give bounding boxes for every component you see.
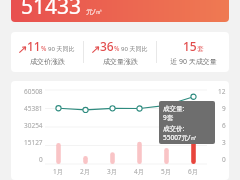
button[interactable]: 60508 xyxy=(11,81,229,180)
staticText: 成交价涨跌 xyxy=(30,57,65,66)
button[interactable]: 上涨 xyxy=(11,32,83,72)
other: 上涨 xyxy=(19,46,26,53)
staticText: 4月 xyxy=(134,167,145,176)
staticText: 5月 xyxy=(161,167,172,176)
staticText: 60508 xyxy=(24,87,43,96)
button[interactable]: 51433 xyxy=(11,0,229,22)
staticText: % xyxy=(114,44,120,53)
staticText: 6 xyxy=(222,121,226,130)
staticText: 9 xyxy=(222,104,226,113)
staticText: 90 天同比 xyxy=(121,45,148,53)
staticText: 成交价: xyxy=(163,124,185,133)
staticText: 0 xyxy=(222,155,226,164)
staticText: 15 xyxy=(183,38,197,54)
staticText: 55007元/㎡ xyxy=(163,133,198,141)
staticText: 12 xyxy=(218,87,226,96)
staticText: 90 天同比 xyxy=(48,45,75,53)
staticText: 3月 xyxy=(107,167,118,176)
staticText: 30254 xyxy=(24,121,43,130)
staticText: 11 xyxy=(27,38,41,54)
staticText: 51433 xyxy=(21,0,82,20)
staticText: 1月 xyxy=(53,167,64,176)
staticText: 成交量: xyxy=(163,104,185,113)
staticText: 15127 xyxy=(24,138,43,147)
staticText: 2月 xyxy=(80,167,91,176)
staticText: % xyxy=(41,44,47,53)
staticText: 45381 xyxy=(24,104,43,113)
staticText: 套 xyxy=(197,45,204,53)
staticText: 近 90 天成交量 xyxy=(170,57,217,67)
button[interactable]: 上涨 xyxy=(84,32,156,72)
staticText: 6月 xyxy=(188,167,199,176)
button[interactable]: 15 xyxy=(157,32,229,72)
staticText: 9套 xyxy=(163,113,174,122)
staticText: 0 xyxy=(39,155,43,164)
staticText: 成交量涨跌 xyxy=(103,57,138,66)
other: 上涨 xyxy=(92,46,99,53)
staticText: 3 xyxy=(222,138,226,147)
button[interactable]: 成交量: xyxy=(163,104,211,141)
staticText: 元/㎡ xyxy=(86,7,103,17)
staticText: 36 xyxy=(100,38,114,54)
